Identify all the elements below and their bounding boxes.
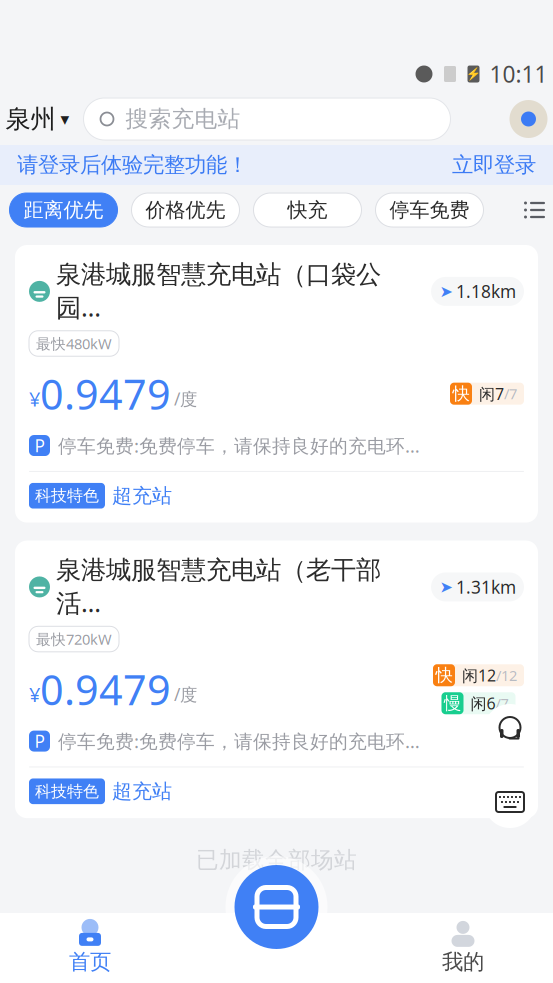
button[interactable]: 扫码充电 <box>225 856 327 958</box>
staticText: 首页 <box>69 949 111 975</box>
staticText: /12 <box>496 665 517 685</box>
staticText: 科技特色 <box>35 486 99 506</box>
staticText: /7 <box>504 384 517 403</box>
staticText: 立即登录 <box>452 152 536 178</box>
staticText: 科技特色 <box>35 781 99 801</box>
button[interactable]: 泉州 <box>5 98 69 140</box>
staticText: 最快480kW <box>36 334 112 353</box>
button[interactable]: 首页 <box>0 913 180 983</box>
staticText: 闲7 <box>479 383 504 404</box>
button[interactable]: 客服 <box>484 704 536 756</box>
button[interactable]: 请登录后体验完整功能！ <box>0 145 553 185</box>
staticText: 慢 <box>444 693 461 714</box>
staticText: ➤ <box>439 578 452 596</box>
staticText: ⚡ <box>466 67 481 81</box>
staticText: 搜索充电站 <box>125 105 240 133</box>
button[interactable]: 停车免费 <box>375 193 483 227</box>
staticText: 请登录后体验完整功能！ <box>17 152 248 178</box>
staticText: 闲12 <box>462 665 496 686</box>
staticText: ▾ <box>60 109 69 129</box>
staticText: 停车免费 <box>389 198 469 222</box>
staticText: 泉港城服智慧充电站（老干部活… <box>56 555 381 619</box>
staticText: 闲6 <box>470 693 495 714</box>
staticText: 超充站 <box>112 483 172 508</box>
staticText: 1.31km <box>456 575 516 598</box>
staticText: P <box>34 434 44 457</box>
staticText: /7 <box>495 693 508 713</box>
button[interactable]: 地图 <box>509 100 547 138</box>
staticText: 停车免费:免费停车，请保持良好的充电环… <box>58 433 420 458</box>
staticText: 最快720kW <box>36 629 112 649</box>
button[interactable]: 键盘输入 <box>484 776 536 828</box>
staticText: ¥ <box>29 681 40 708</box>
button[interactable]: 价格优先 <box>131 193 239 227</box>
staticText: 1.18km <box>456 280 516 303</box>
button[interactable]: 快充 <box>253 193 361 227</box>
button[interactable]: 搜索充电站 <box>83 98 450 140</box>
staticText: 价格优先 <box>145 198 225 222</box>
staticText: 快充 <box>287 198 327 222</box>
staticText: /度 <box>174 387 197 410</box>
staticText: 超充站 <box>112 779 172 804</box>
button[interactable]: 列表视图 <box>519 193 549 227</box>
staticText: 快 <box>452 383 469 404</box>
staticText: 0.9479 <box>40 662 171 717</box>
staticText: ¥ <box>29 385 40 412</box>
button[interactable]: 泉港城服智慧充电站（老干部活… <box>15 541 538 818</box>
button[interactable]: 距离优先 <box>9 193 117 227</box>
staticText: 泉州 <box>5 103 55 134</box>
staticText: 泉港城服智慧充电站（口袋公园… <box>56 259 381 324</box>
staticText: ➤ <box>439 282 452 300</box>
staticText: 停车免费:免费停车，请保持良好的充电环… <box>58 729 420 753</box>
staticText: 距离优先 <box>23 198 103 222</box>
staticText: P <box>34 730 44 753</box>
button[interactable]: 我的 <box>373 913 553 983</box>
staticText: 10:11 <box>489 59 547 89</box>
staticText: 我的 <box>442 949 484 975</box>
staticText: 0.9479 <box>40 366 171 421</box>
staticText: 已加载全部场站 <box>196 846 357 874</box>
staticText: /度 <box>174 683 197 706</box>
staticText: 快 <box>435 665 452 686</box>
button[interactable]: 泉港城服智慧充电站（口袋公园… <box>15 245 538 523</box>
